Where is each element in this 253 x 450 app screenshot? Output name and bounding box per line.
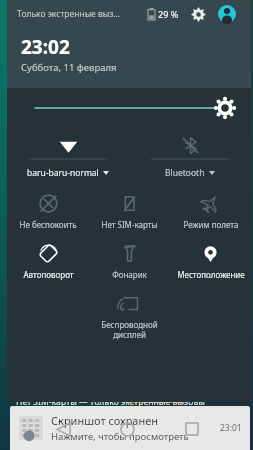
staticText: 23:01 bbox=[220, 422, 242, 434]
staticText: Не беспокоить bbox=[19, 219, 77, 230]
staticText: Суббота, 11 февраля bbox=[21, 61, 117, 74]
button[interactable]: Bluetooth bbox=[129, 130, 251, 188]
staticText: Режим полета bbox=[183, 219, 239, 230]
button[interactable]: Фонарик bbox=[89, 244, 170, 280]
button[interactable]: Home bbox=[116, 418, 138, 440]
button[interactable]: Автоповорот bbox=[7, 244, 89, 280]
staticText: 29 % bbox=[158, 8, 179, 20]
staticText: Местоположение bbox=[177, 269, 245, 280]
button[interactable]: Режим полета bbox=[170, 194, 251, 230]
staticText: Фонарик bbox=[112, 269, 147, 280]
button[interactable]: Беспроводной дисплей bbox=[89, 294, 170, 340]
staticText: Нет SIM-карты — Только экстренные вызовы bbox=[16, 396, 205, 408]
staticText: Bluetooth bbox=[165, 167, 205, 179]
staticText: Беспроводной дисплей bbox=[101, 319, 158, 340]
staticText: Автоповорот bbox=[23, 269, 74, 280]
button[interactable]: User profile bbox=[217, 4, 237, 24]
staticText: Только экстренные выз… bbox=[17, 8, 121, 20]
staticText: baru-baru-normal bbox=[27, 167, 99, 179]
button[interactable]: Местоположение bbox=[170, 244, 251, 280]
staticText: Нажмите, чтобы просмотреть bbox=[51, 430, 189, 443]
button[interactable]: Recent apps bbox=[181, 418, 203, 440]
button[interactable]: Не беспокоить bbox=[7, 194, 89, 230]
staticText: 23:02 bbox=[21, 34, 70, 60]
button[interactable]: Settings bbox=[189, 5, 207, 23]
button[interactable]: Скриншот сохранен bbox=[10, 406, 250, 450]
staticText: Нет SIM-карты bbox=[101, 219, 158, 230]
staticText: Скриншот сохранен bbox=[51, 413, 159, 428]
button[interactable]: baru-baru-normal bbox=[7, 130, 129, 188]
button[interactable]: Brightness bbox=[7, 88, 251, 128]
button[interactable]: Back bbox=[52, 418, 74, 440]
button[interactable]: Нет SIM-карты bbox=[89, 194, 170, 230]
